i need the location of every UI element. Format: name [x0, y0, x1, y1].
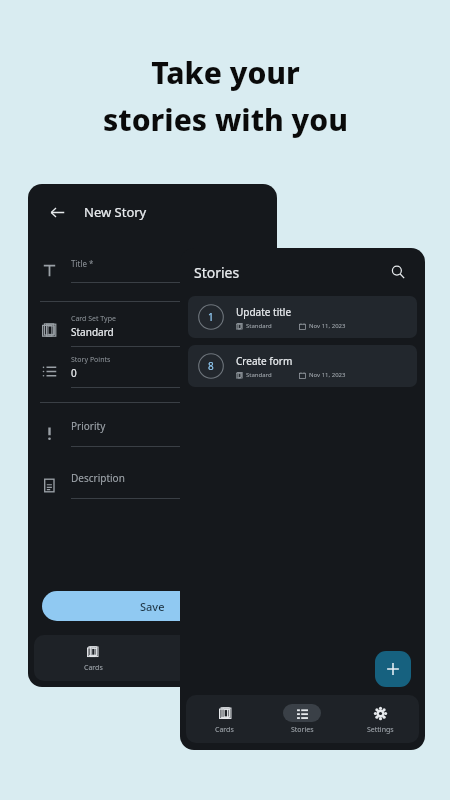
- button[interactable]: 8: [188, 345, 417, 387]
- button[interactable]: Stories: [263, 695, 341, 743]
- staticText: Title *: [71, 258, 94, 269]
- staticText: Update title: [236, 305, 292, 319]
- staticText: New Story: [84, 203, 147, 221]
- button[interactable]: Back: [42, 197, 72, 227]
- staticText: Priority: [71, 419, 106, 433]
- staticText: Create form: [236, 354, 293, 368]
- staticText: Nov 11, 2023: [309, 322, 346, 330]
- staticText: Save: [140, 599, 165, 614]
- button[interactable]: Search: [385, 259, 411, 285]
- button[interactable]: Priority: [28, 415, 277, 451]
- staticText: Description: [71, 471, 125, 485]
- button[interactable]: Stories: [152, 635, 271, 681]
- staticText: Stories: [194, 263, 240, 282]
- staticText: stories with you: [103, 99, 348, 140]
- staticText: Take your: [151, 52, 300, 93]
- button[interactable]: 1: [188, 296, 417, 338]
- staticText: Standard: [71, 325, 114, 339]
- staticText: Standard: [246, 371, 272, 379]
- staticText: Standard: [246, 322, 272, 330]
- staticText: Nov 11, 2023: [309, 371, 346, 379]
- button[interactable]: Settings: [341, 695, 419, 743]
- button[interactable]: Story Points: [28, 351, 277, 392]
- button[interactable]: Save: [42, 591, 263, 621]
- button[interactable]: Cards: [34, 635, 152, 681]
- staticText: Card Set Type: [71, 314, 116, 324]
- button[interactable]: Card Set Type: [28, 310, 277, 351]
- staticText: Cards: [215, 725, 234, 735]
- staticText: 8: [208, 359, 214, 373]
- staticText: Settings: [367, 725, 394, 735]
- button[interactable]: Title *: [28, 254, 277, 287]
- button[interactable]: Add story: [375, 651, 411, 687]
- staticText: Story Points: [71, 355, 111, 365]
- button[interactable]: Cards: [186, 695, 263, 743]
- button[interactable]: Description: [28, 467, 277, 503]
- staticText: Stories: [291, 725, 314, 735]
- staticText: 1: [208, 310, 214, 324]
- staticText: 0: [71, 366, 77, 380]
- staticText: Cards: [84, 663, 103, 673]
